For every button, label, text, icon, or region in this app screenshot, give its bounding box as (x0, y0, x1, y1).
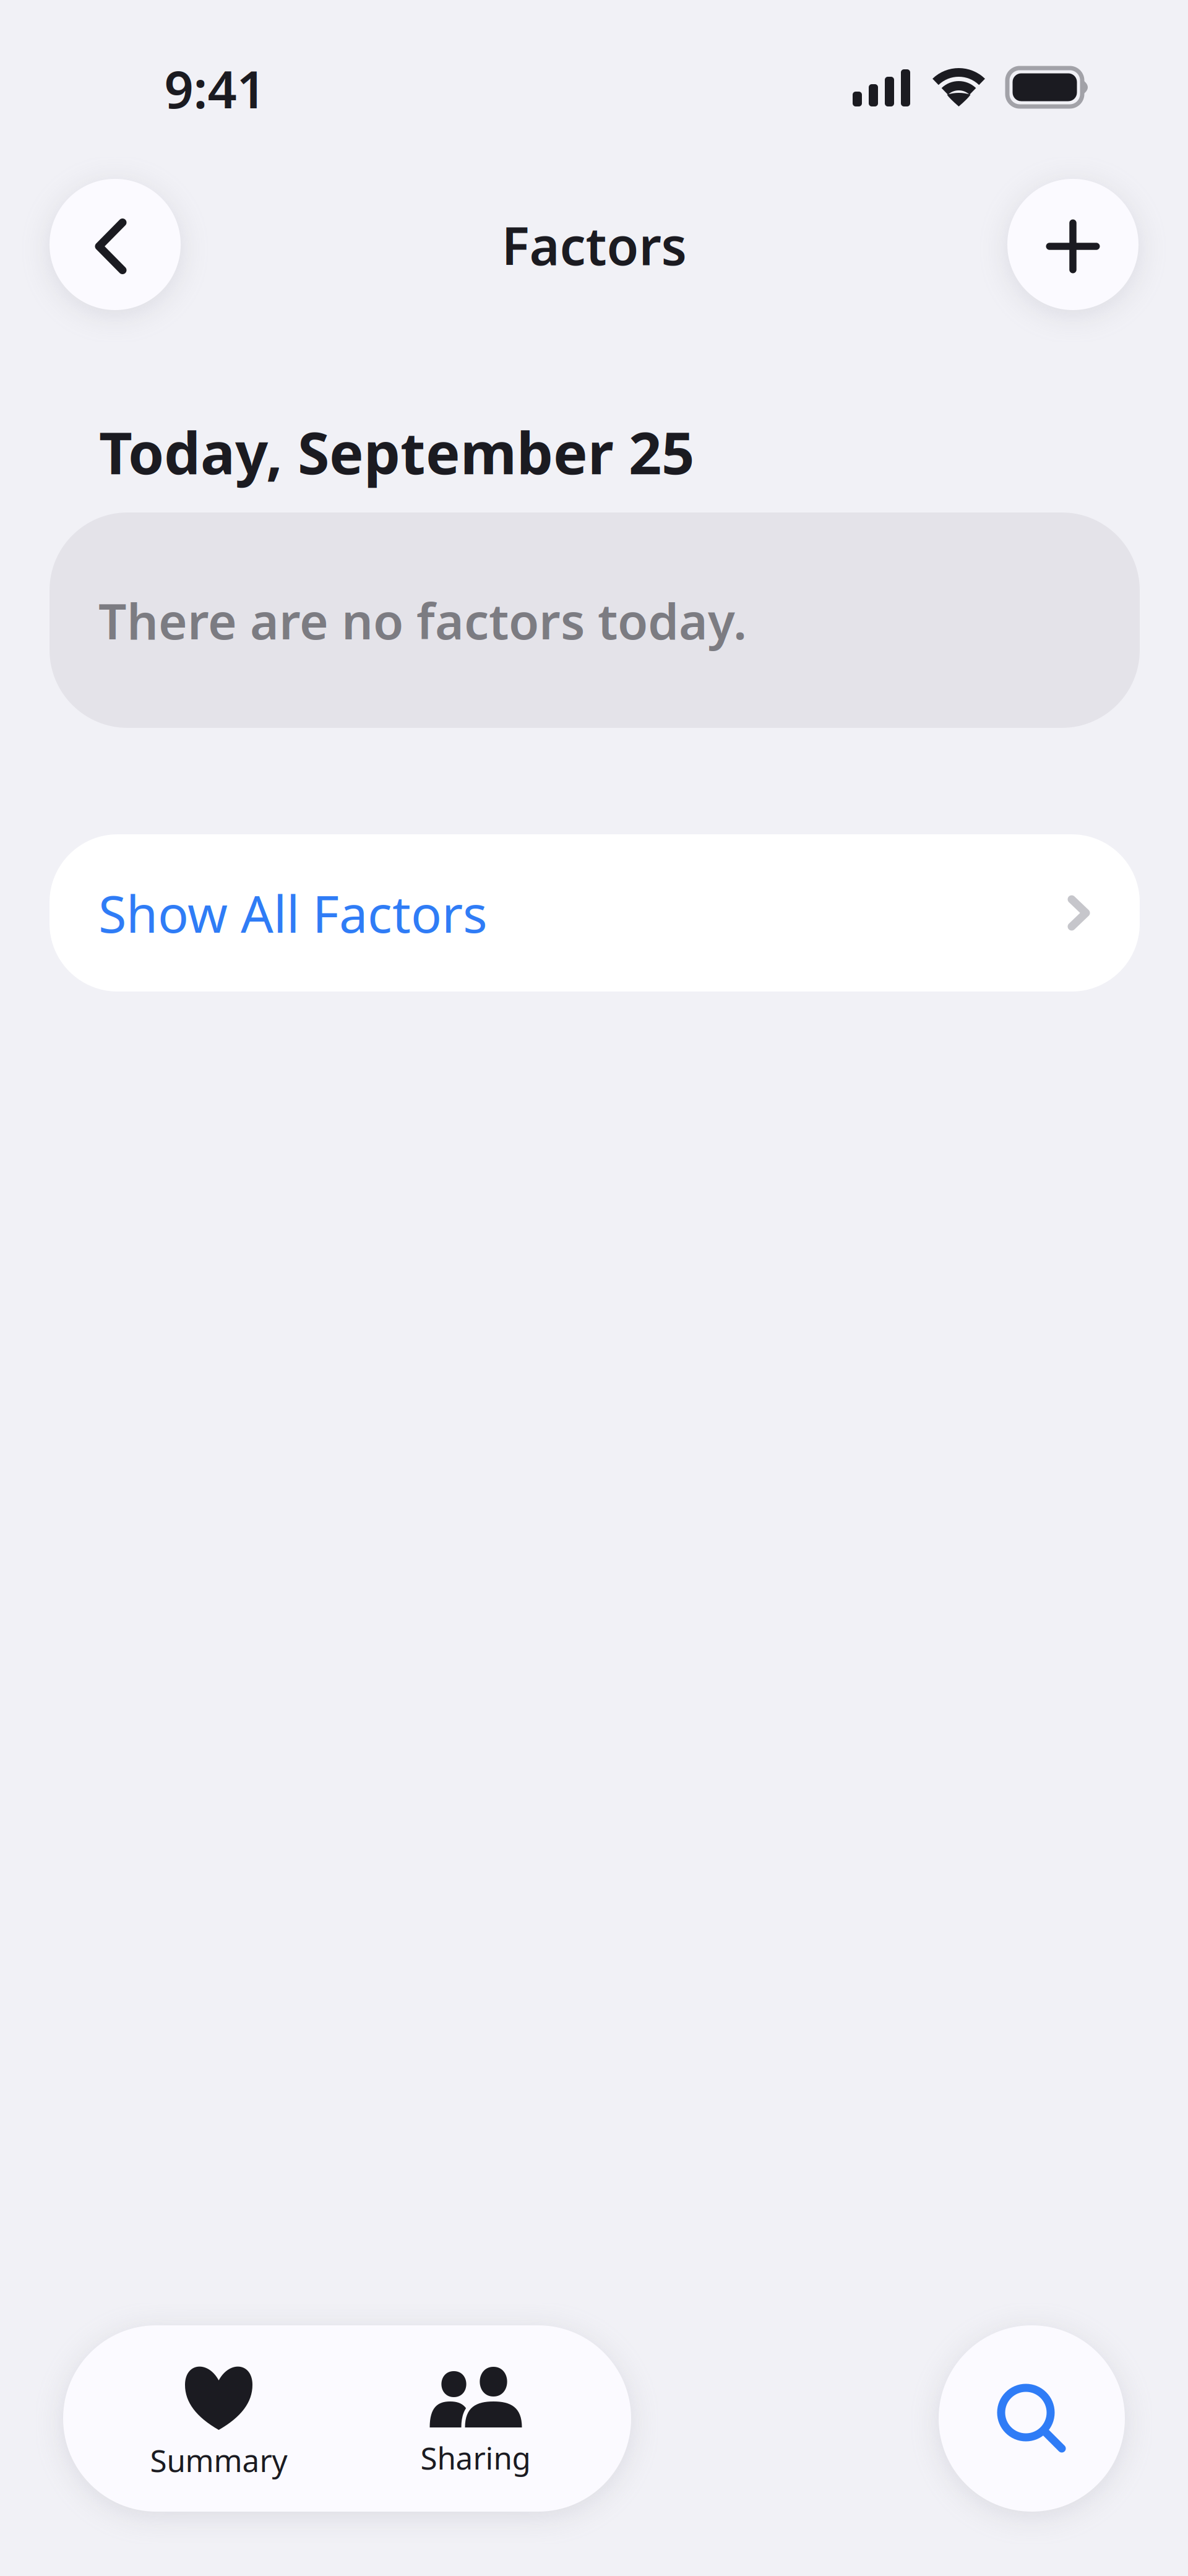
button[interactable]: Search (939, 2325, 1125, 2512)
button[interactable]: Sharing (347, 2325, 604, 2512)
button[interactable]: Add (1007, 179, 1138, 310)
staticText: Summary (150, 2440, 287, 2480)
staticText: Factors (501, 211, 687, 280)
button[interactable]: Summary (90, 2325, 347, 2512)
button[interactable]: Show All Factors (49, 834, 1140, 992)
button[interactable]: Back (49, 179, 181, 310)
staticText: Sharing (420, 2437, 531, 2478)
staticText: There are no factors today. (98, 587, 747, 653)
staticText: Today, September 25 (99, 413, 694, 490)
staticText: Show All Factors (98, 879, 488, 947)
staticText: 9:41 (164, 55, 266, 122)
